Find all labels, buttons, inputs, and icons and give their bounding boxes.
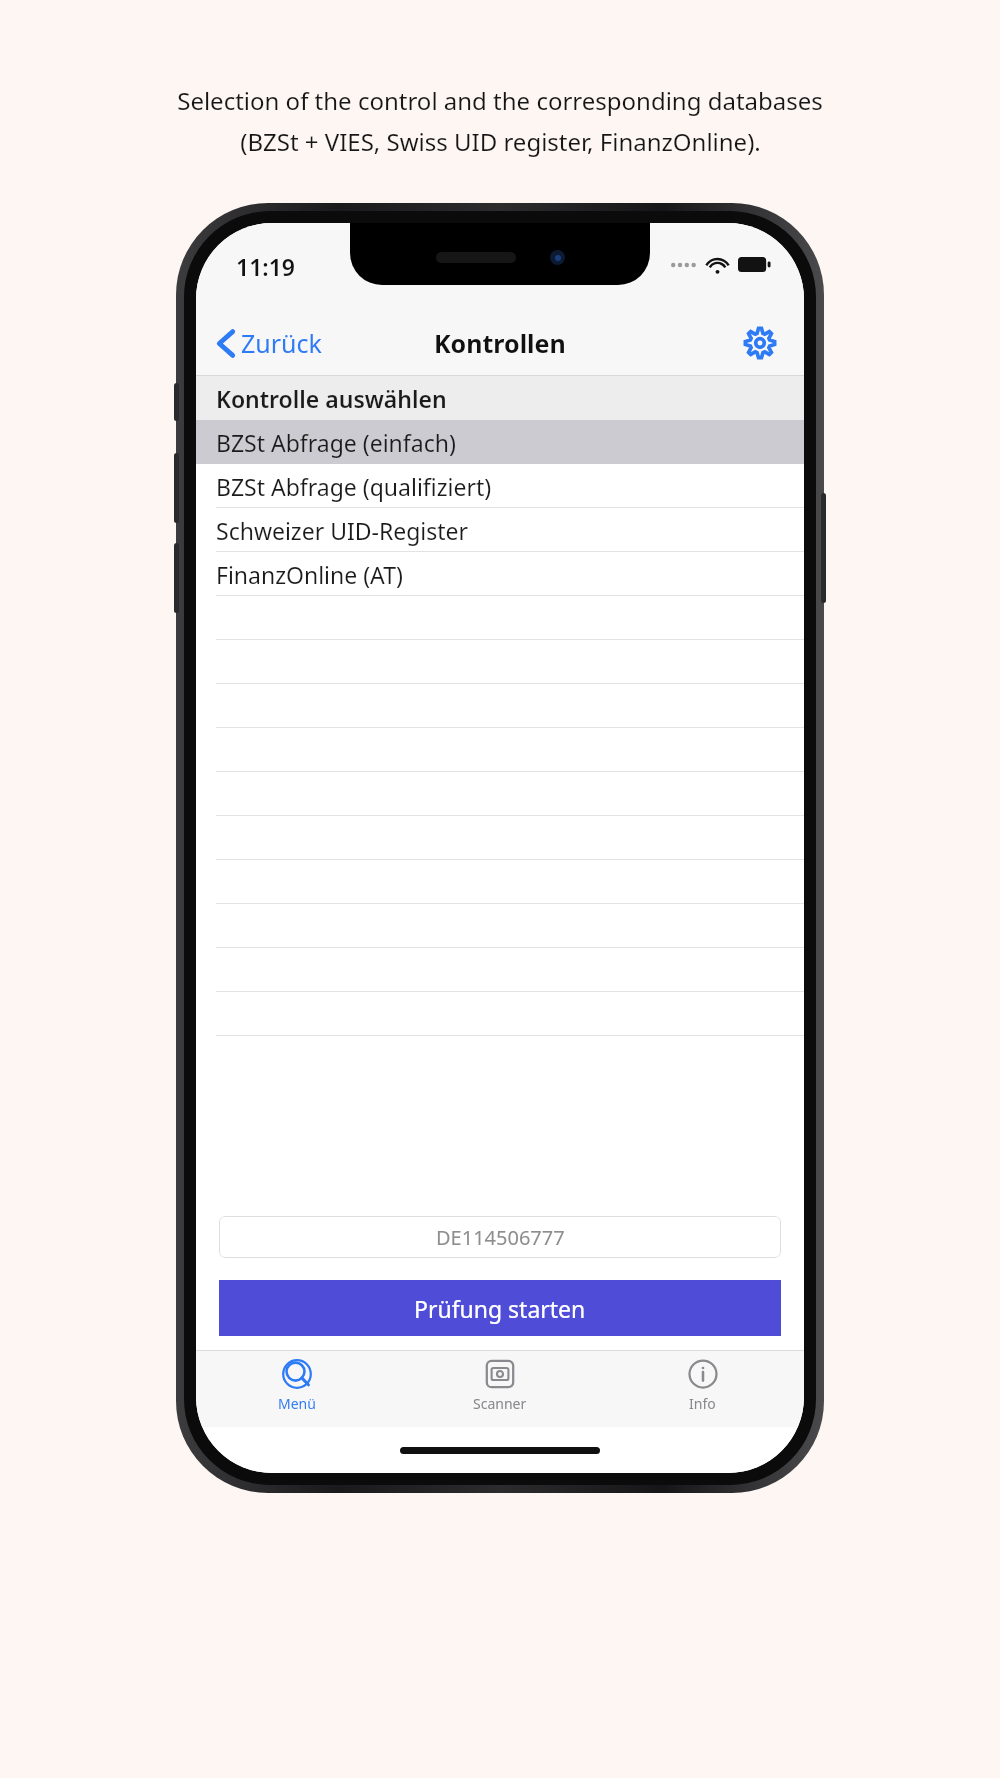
staticText: (BZSt + VIES, Swiss UID register, Finanz… bbox=[240, 125, 761, 158]
button[interactable] bbox=[196, 772, 804, 816]
staticText: Kontrolle auswählen bbox=[216, 383, 447, 414]
button[interactable] bbox=[196, 860, 804, 904]
button[interactable] bbox=[196, 728, 804, 772]
button[interactable]: Schweizer UID-Register bbox=[196, 508, 804, 552]
button[interactable]: Kontrolle auswählen bbox=[196, 376, 804, 420]
button[interactable]: Prüfung starten bbox=[219, 1280, 781, 1336]
button[interactable]: Zurück bbox=[210, 320, 330, 366]
button[interactable]: BZSt Abfrage (qualifiziert) bbox=[196, 464, 804, 508]
button[interactable] bbox=[196, 904, 804, 948]
staticText: Schweizer UID-Register bbox=[216, 515, 469, 546]
button[interactable] bbox=[196, 640, 804, 684]
staticText: Menü bbox=[278, 1394, 316, 1413]
button[interactable]: Scanner bbox=[398, 1351, 601, 1427]
staticText: Zurück bbox=[241, 326, 322, 360]
button[interactable] bbox=[196, 992, 804, 1036]
staticText: 11:19 bbox=[236, 251, 295, 282]
staticText: BZSt Abfrage (qualifiziert) bbox=[216, 471, 492, 502]
button[interactable]: BZSt Abfrage (einfach) bbox=[196, 420, 804, 464]
staticText: DE114506777 bbox=[436, 1224, 565, 1251]
button[interactable] bbox=[196, 816, 804, 860]
button[interactable] bbox=[196, 596, 804, 640]
button[interactable]: Menü bbox=[196, 1351, 398, 1427]
staticText: Kontrollen bbox=[434, 326, 566, 360]
staticText: Selection of the control and the corresp… bbox=[177, 84, 823, 117]
staticText: BZSt Abfrage (einfach) bbox=[216, 427, 456, 458]
button[interactable]: Info bbox=[601, 1351, 804, 1427]
staticText: FinanzOnline (AT) bbox=[216, 559, 403, 590]
button[interactable]: Settings bbox=[738, 321, 782, 365]
staticText: Scanner bbox=[473, 1394, 527, 1413]
button[interactable]: FinanzOnline (AT) bbox=[196, 552, 804, 596]
button[interactable] bbox=[196, 684, 804, 728]
staticText: Prüfung starten bbox=[414, 1293, 586, 1324]
staticText: Info bbox=[689, 1394, 716, 1413]
button[interactable]: DE114506777 bbox=[219, 1216, 781, 1258]
button[interactable] bbox=[196, 948, 804, 992]
